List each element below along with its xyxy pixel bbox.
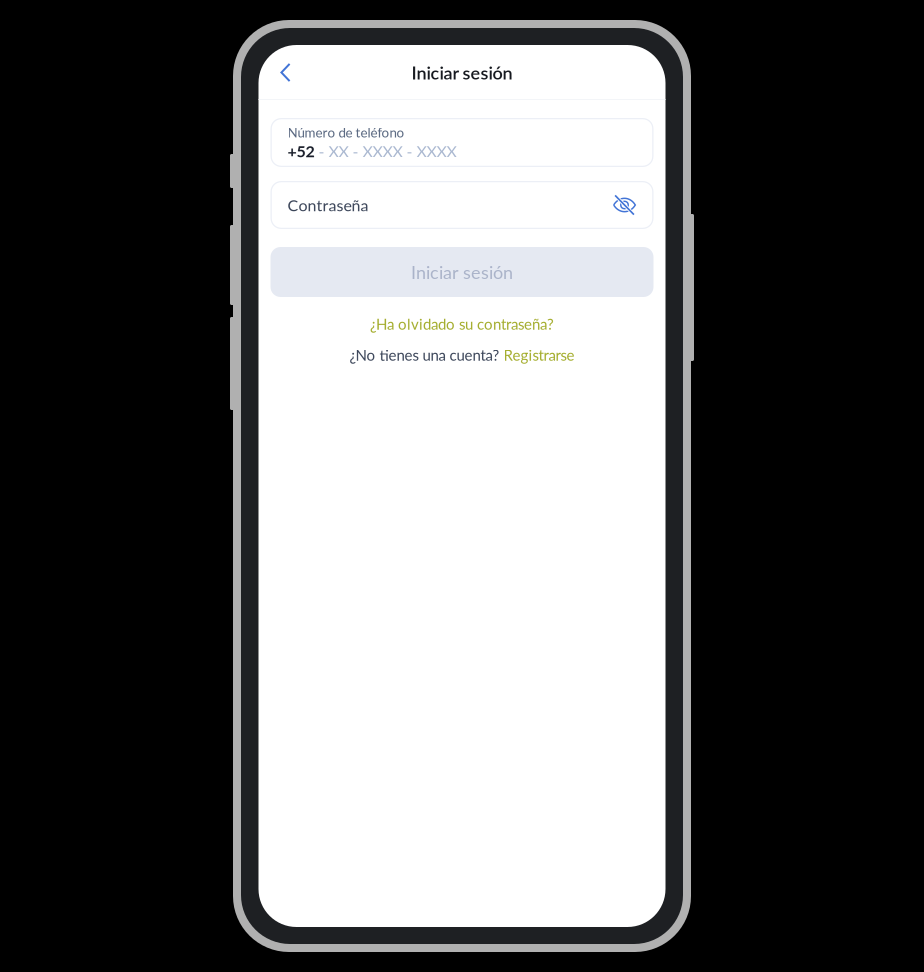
staticText: +52 — [287, 141, 314, 161]
button[interactable]: Atrás — [267, 52, 303, 92]
button[interactable]: Iniciar sesión — [270, 247, 653, 297]
staticText: Contraseña — [287, 195, 368, 215]
staticText: Iniciar sesión — [411, 62, 512, 83]
button[interactable]: Mostrar contraseña — [612, 195, 636, 215]
button[interactable]: ¿No tienes una cuenta? — [349, 344, 574, 366]
staticText: Número de teléfono — [287, 124, 404, 140]
staticText: Iniciar sesión — [411, 261, 513, 283]
staticText: - XX - XXXX - XXXX — [314, 141, 456, 161]
staticText: ¿No tienes una cuenta? — [349, 346, 503, 364]
staticText: ¿Ha olvidado su contraseña? — [370, 315, 554, 333]
button[interactable]: ¿Ha olvidado su contraseña? — [370, 313, 554, 335]
staticText: Registrarse — [503, 346, 574, 364]
